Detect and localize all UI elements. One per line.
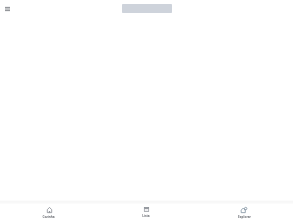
button[interactable]: Lista xyxy=(97,204,195,220)
staticText: Explorar xyxy=(238,215,251,219)
staticText: Cozinha xyxy=(42,215,55,219)
button[interactable]: Cozinha xyxy=(0,204,97,220)
button[interactable]: Open navigation menu xyxy=(0,0,16,16)
button[interactable]: Explorar xyxy=(195,204,293,220)
staticText: Lista xyxy=(142,214,150,218)
